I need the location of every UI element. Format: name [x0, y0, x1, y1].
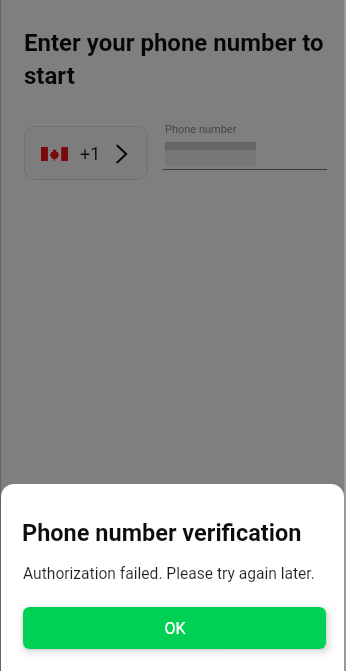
button[interactable]: Select country calling code — [24, 126, 148, 180]
staticText: +1 — [80, 143, 101, 164]
staticText: Enter your phone number to start — [24, 29, 324, 90]
staticText: Phone number — [165, 123, 237, 136]
staticText: Phone number verification — [22, 519, 302, 547]
staticText: Authorization failed. Please try again l… — [23, 565, 315, 583]
staticText: OK — [164, 619, 186, 638]
button[interactable]: OK — [23, 607, 326, 649]
